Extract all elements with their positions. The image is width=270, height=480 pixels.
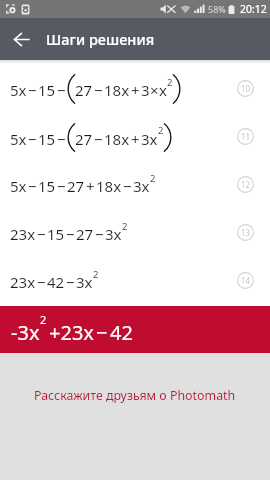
staticText: × <box>150 80 159 100</box>
button[interactable]: Back <box>0 18 42 60</box>
staticText: 15 <box>47 224 65 244</box>
staticText: 27 <box>75 129 93 149</box>
staticText: − <box>66 272 75 292</box>
staticText: − <box>37 224 46 244</box>
staticText: 20:12 <box>240 2 267 16</box>
button[interactable]: -3x <box>0 306 270 353</box>
staticText: − <box>37 272 46 292</box>
staticText: 42 <box>110 319 133 346</box>
staticText: 14 <box>241 275 251 286</box>
staticText: − <box>57 176 66 196</box>
staticText: 18x <box>104 129 130 149</box>
button[interactable]: 5x <box>0 114 270 162</box>
button[interactable]: 23x <box>0 258 270 306</box>
staticText: 2 <box>158 124 164 137</box>
staticText: 15 <box>38 129 56 149</box>
staticText: +23x <box>49 319 94 346</box>
button[interactable]: 23x <box>0 210 270 258</box>
staticText: 3x <box>105 224 122 244</box>
staticText: − <box>57 129 66 149</box>
staticText: 23x <box>10 272 36 292</box>
staticText: -3x <box>11 319 40 346</box>
staticText: − <box>66 224 75 244</box>
staticText: 10 <box>241 83 251 94</box>
staticText: Шаги решения <box>46 29 155 49</box>
staticText: 3 <box>141 80 150 100</box>
button[interactable]: 5x <box>0 66 270 114</box>
staticText: 27 <box>75 80 93 100</box>
staticText: 3x <box>141 129 158 149</box>
staticText: 2 <box>93 268 99 281</box>
staticText: 11 <box>241 131 251 142</box>
staticText: − <box>57 80 66 100</box>
staticText: x <box>159 80 167 100</box>
staticText: 5x <box>10 129 27 149</box>
staticText: − <box>28 129 37 149</box>
staticText: 15 <box>38 80 56 100</box>
staticText: 15 <box>38 176 56 196</box>
staticText: + <box>131 129 140 149</box>
staticText: 27 <box>67 176 85 196</box>
staticText: 3x <box>76 272 93 292</box>
staticText: 42 <box>47 272 65 292</box>
staticText: − <box>123 176 132 196</box>
staticText: − <box>95 224 104 244</box>
staticText: 2 <box>122 220 128 233</box>
staticText: + <box>86 176 95 196</box>
button[interactable]: Расскажите друзьям о Photomath <box>0 381 270 409</box>
staticText: 18x <box>104 80 130 100</box>
staticText: 13 <box>241 227 251 238</box>
staticText: − <box>28 176 37 196</box>
staticText: − <box>94 80 103 100</box>
staticText: 27 <box>76 224 94 244</box>
staticText: 5x <box>10 80 27 100</box>
staticText: 12 <box>241 179 251 190</box>
staticText: − <box>96 319 108 346</box>
staticText: 23x <box>10 224 36 244</box>
button[interactable]: 5x <box>0 162 270 210</box>
staticText: 58% <box>208 3 226 15</box>
staticText: 3x <box>133 176 150 196</box>
staticText: 2 <box>150 172 156 185</box>
staticText: − <box>94 129 103 149</box>
staticText: 2 <box>40 312 47 327</box>
staticText: 18x <box>96 176 122 196</box>
staticText: 2 <box>167 76 173 89</box>
staticText: − <box>28 80 37 100</box>
staticText: + <box>131 80 140 100</box>
staticText: 5x <box>10 176 27 196</box>
staticText: Расскажите друзьям о Photomath <box>34 387 236 404</box>
